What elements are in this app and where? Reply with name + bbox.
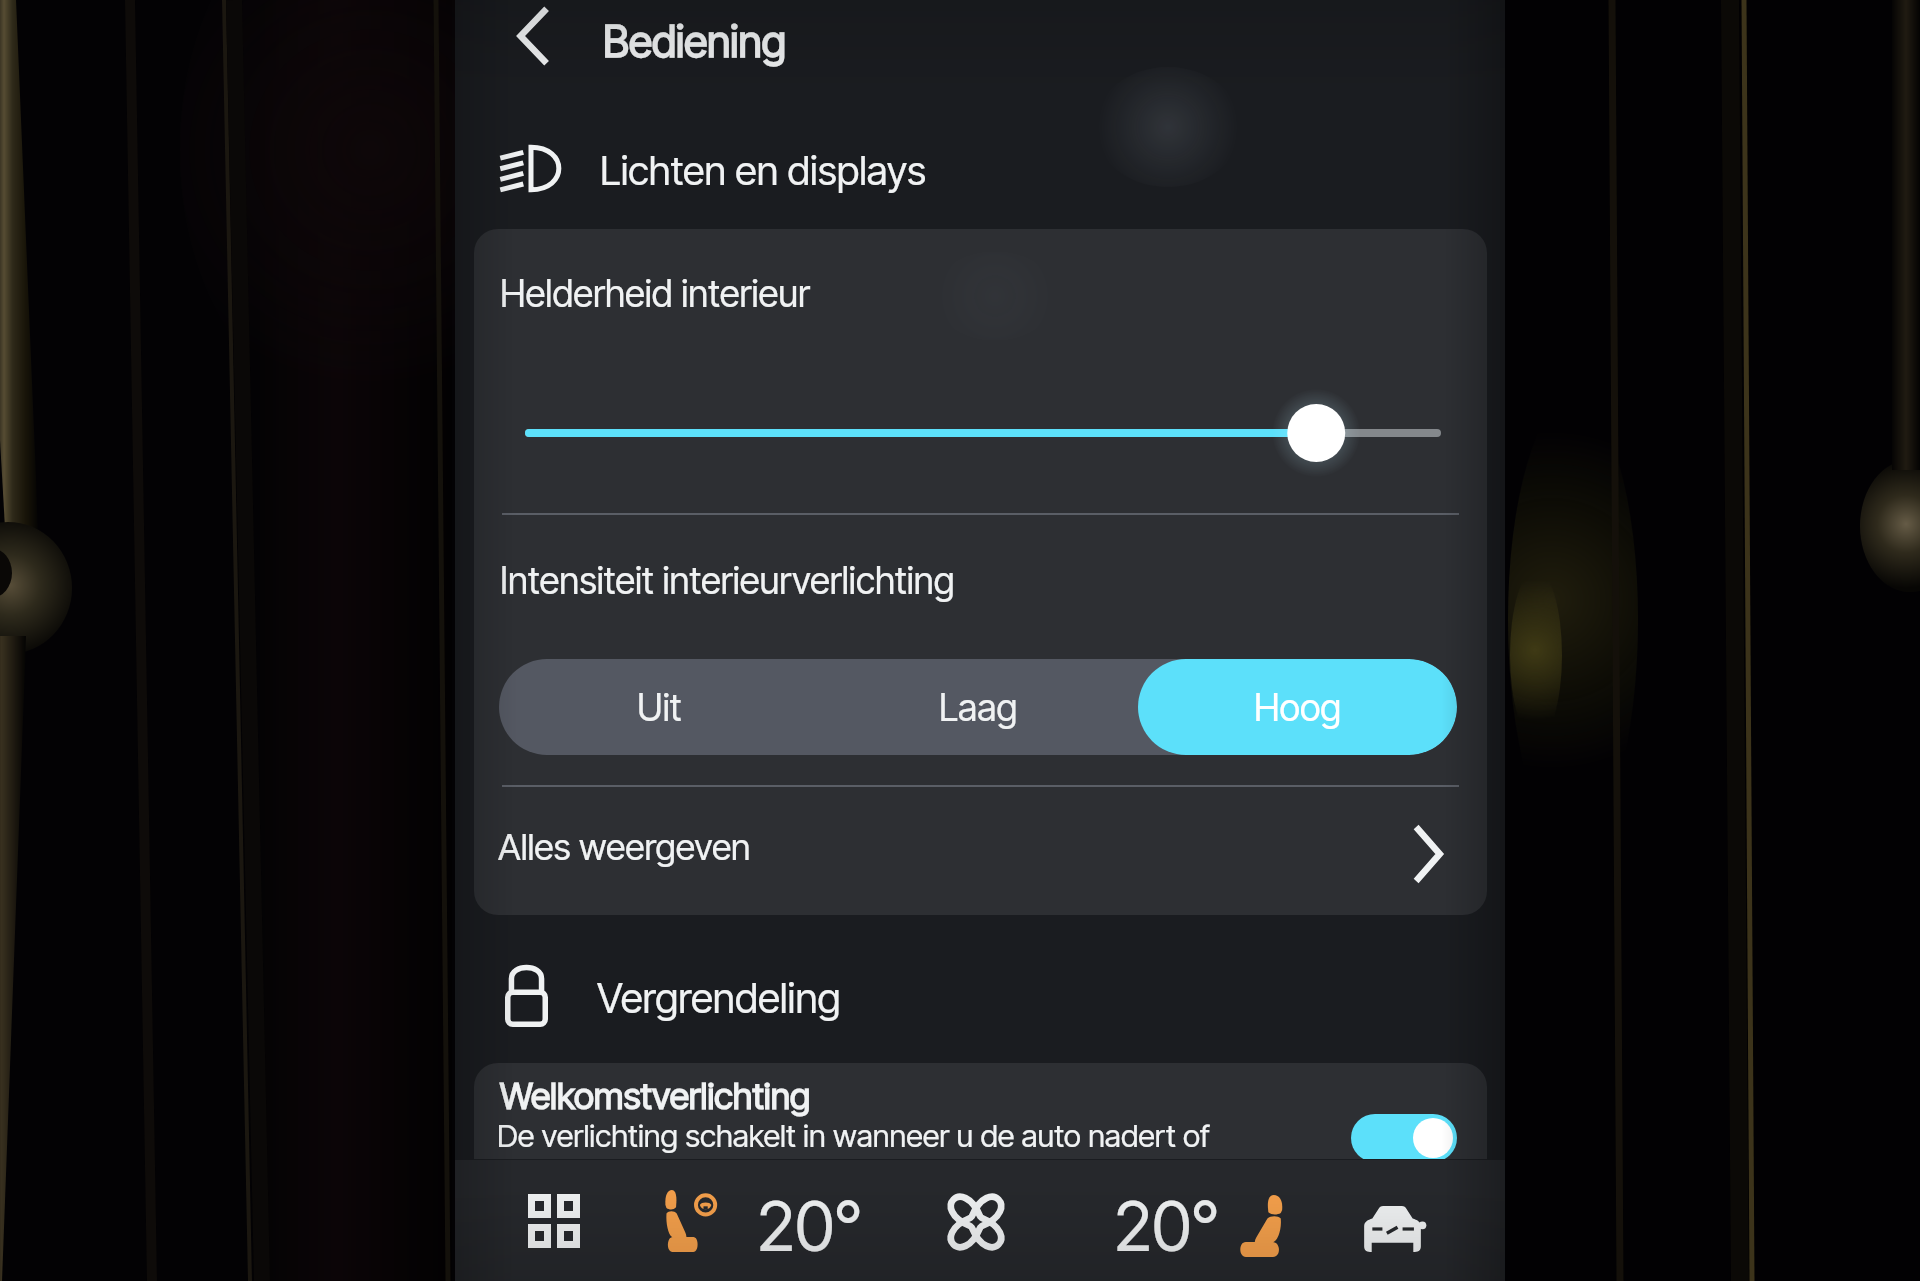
button[interactable]: Passenger seat heating xyxy=(1218,1160,1304,1281)
staticText: 20° xyxy=(757,1185,862,1267)
staticText: Helderheid interieur xyxy=(500,271,811,316)
button[interactable]: Vergrendeling xyxy=(485,962,1005,1042)
button[interactable]: Hoog xyxy=(1138,659,1457,755)
button[interactable]: Apps xyxy=(503,1160,603,1281)
button[interactable]: Lichten en displays xyxy=(485,133,1045,207)
staticText: Alles weergeven xyxy=(498,825,751,869)
button[interactable]: Back xyxy=(499,1,569,71)
button[interactable]: Fan xyxy=(921,1160,1029,1281)
button[interactable]: 20° xyxy=(743,1160,875,1281)
staticText: Hoog xyxy=(1254,685,1342,730)
staticText: Uit xyxy=(637,685,682,730)
button[interactable]: Uit xyxy=(499,659,819,755)
button[interactable]: Welkomstverlichting xyxy=(474,1063,1487,1159)
staticText: Lichten en displays xyxy=(600,146,927,194)
button[interactable]: Alles weergeven xyxy=(474,787,1487,915)
staticText: Vergrendeling xyxy=(597,973,841,1023)
staticText: Welkomstverlichting xyxy=(500,1074,811,1118)
button[interactable]: 20° xyxy=(1100,1160,1232,1281)
button[interactable]: Car status xyxy=(1341,1160,1444,1281)
button[interactable]: Laag xyxy=(819,659,1138,755)
button[interactable]: Helderheid interieur slider xyxy=(514,403,1454,463)
button[interactable]: Driver seat heating xyxy=(640,1160,740,1281)
button[interactable]: Welkomstverlichting toggle xyxy=(1351,1114,1457,1159)
staticText: Intensiteit interieurverlichting xyxy=(500,558,955,603)
staticText: De verlichting schakelt in wanneer u de … xyxy=(497,1117,1210,1155)
staticText: Bediening xyxy=(603,15,786,67)
staticText: 20° xyxy=(1114,1185,1219,1267)
staticText: Laag xyxy=(939,685,1018,730)
